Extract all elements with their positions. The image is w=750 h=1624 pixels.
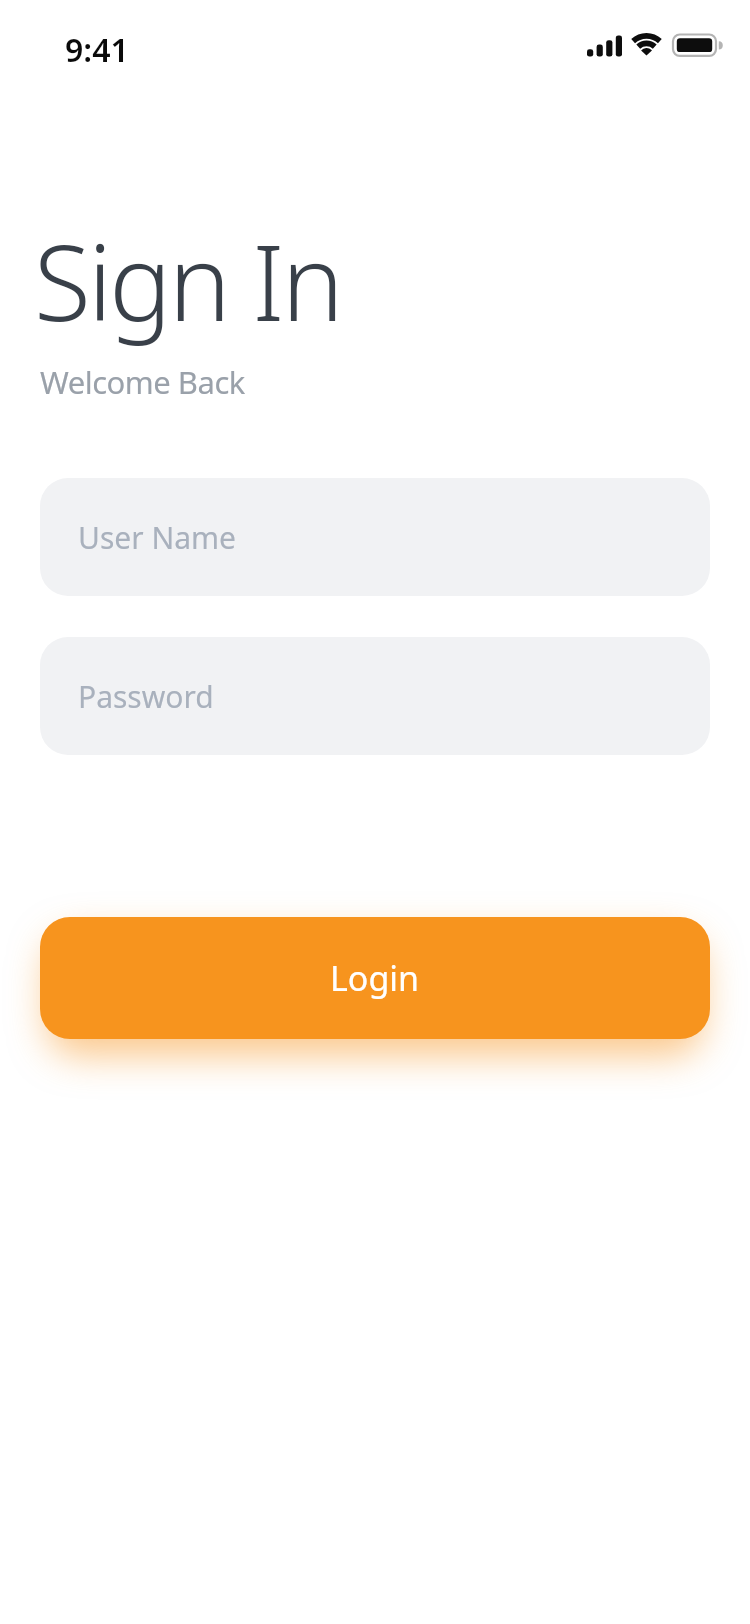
button[interactable]: Password	[40, 637, 710, 755]
staticText: Password	[78, 676, 214, 717]
staticText: Welcome Back	[40, 361, 245, 403]
staticText: 9:41	[65, 28, 129, 72]
button[interactable]: Login	[40, 917, 710, 1039]
button[interactable]: User Name	[40, 478, 710, 596]
staticText: User Name	[78, 517, 237, 558]
staticText: Login	[330, 955, 420, 1001]
staticText: Sign In	[34, 210, 341, 352]
